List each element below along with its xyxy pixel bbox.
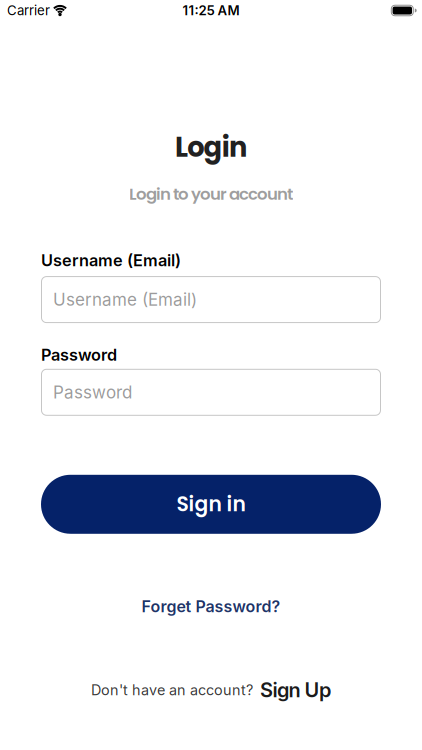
- button[interactable]: Sign in: [41, 475, 381, 534]
- staticText: Username (Email): [53, 289, 197, 310]
- staticText: 11:25 AM: [182, 2, 239, 18]
- staticText: Login to your account: [129, 182, 293, 205]
- staticText: Don't have an account?: [91, 681, 253, 699]
- button[interactable]: Sign Up: [260, 678, 331, 702]
- staticText: Username (Email): [41, 250, 181, 270]
- staticText: Sign in: [176, 490, 245, 518]
- staticText: Login: [175, 128, 247, 166]
- staticText: Password: [53, 382, 132, 403]
- staticText: Password: [41, 345, 117, 365]
- staticText: Sign Up: [260, 678, 331, 702]
- button[interactable]: Forget Password?: [141, 597, 280, 616]
- staticText: Forget Password?: [141, 597, 280, 616]
- staticText: Carrier: [7, 2, 50, 18]
